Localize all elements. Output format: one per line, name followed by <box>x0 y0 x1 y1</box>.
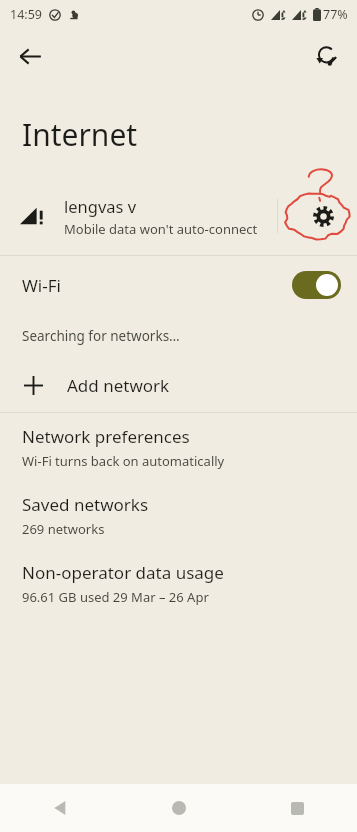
staticText: 77% <box>323 6 348 23</box>
button[interactable]: Non-operator data usage <box>0 549 357 617</box>
button[interactable]: Back <box>8 34 52 78</box>
staticText: 96.61 GB used 29 Mar – 26 Apr <box>22 588 209 606</box>
staticText: Internet <box>22 114 138 155</box>
staticText: 269 networks <box>22 520 105 538</box>
staticText: Wi-Fi <box>22 274 61 297</box>
staticText: Add network <box>67 374 170 397</box>
staticText: lengvas v <box>64 195 137 217</box>
staticText: Mobile data won't auto-connect <box>64 220 258 238</box>
staticText: Wi-Fi turns back on automatically <box>22 452 225 470</box>
staticText: 14:59 <box>10 6 42 23</box>
button[interactable]: Back <box>0 784 119 832</box>
staticText: Network preferences <box>22 425 190 448</box>
button[interactable]: Wi-Fi <box>0 256 357 314</box>
button[interactable]: Network preferences <box>0 413 357 481</box>
button[interactable]: Saved networks <box>0 481 357 549</box>
button[interactable]: Recent apps <box>238 784 357 832</box>
button[interactable]: lengvas v <box>0 177 357 255</box>
button[interactable]: Add network <box>0 358 357 412</box>
button[interactable]: Carrier settings <box>299 192 347 240</box>
staticText: Searching for networks… <box>22 327 180 345</box>
staticText: Saved networks <box>22 493 149 516</box>
button[interactable]: Home <box>119 784 238 832</box>
staticText: Non-operator data usage <box>22 561 224 584</box>
button[interactable]: Help and feedback <box>305 34 349 78</box>
